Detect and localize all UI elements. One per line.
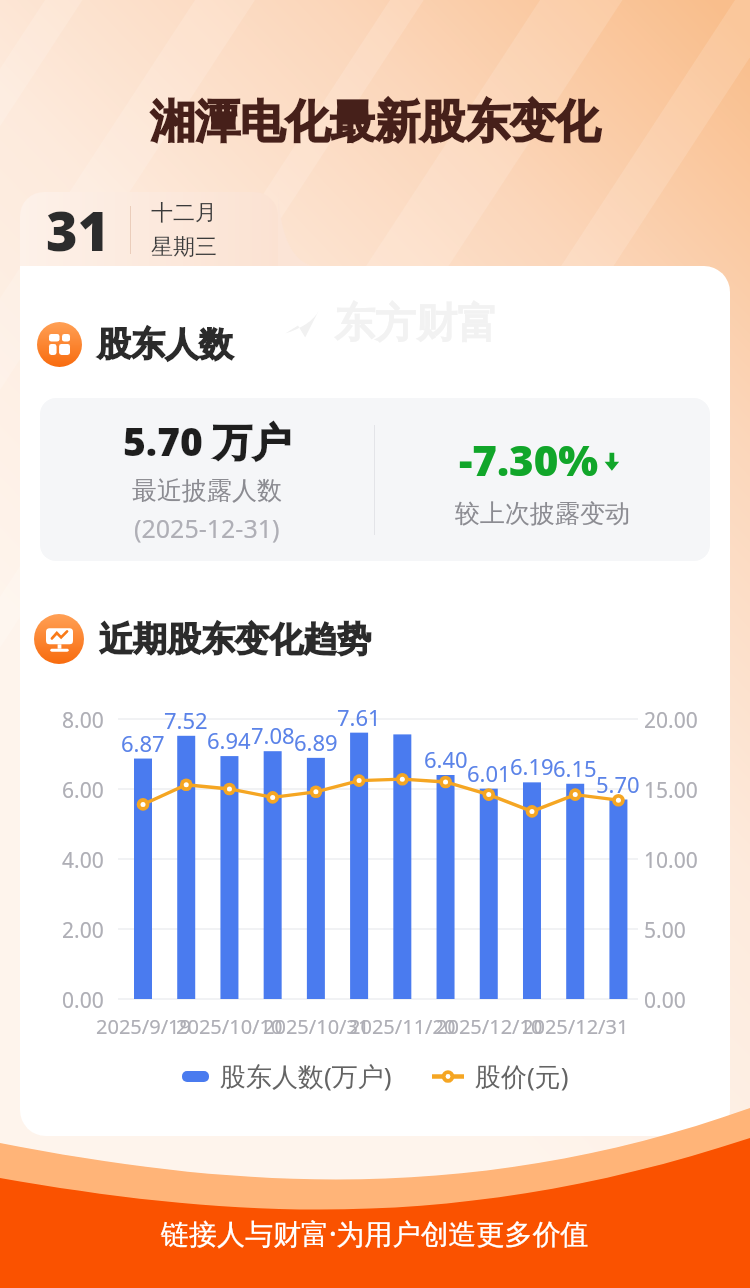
staticText: 2.00 <box>62 916 104 945</box>
staticText: 5.70 <box>596 769 640 799</box>
staticText: 5.70 万户 <box>123 414 291 467</box>
staticText: 15.00 <box>644 776 698 805</box>
staticText: 2025/12/31 <box>522 1013 629 1040</box>
other: 股东人数 <box>37 322 82 367</box>
staticText: -7.30% <box>459 431 599 488</box>
staticText: 7.08 <box>251 720 295 750</box>
staticText: 较上次披露变动 <box>455 498 630 529</box>
staticText: 6.94 <box>207 725 251 755</box>
staticText: 20.00 <box>644 706 698 735</box>
staticText: 6.19 <box>510 751 554 781</box>
staticText: 最近披露人数 <box>132 475 282 506</box>
staticText: 6.00 <box>62 776 104 805</box>
staticText: 链接人与财富·为用户创造更多价值 <box>161 1214 589 1252</box>
other: 近期股东变化趋势 <box>34 614 84 664</box>
staticText: 6.89 <box>294 727 338 757</box>
staticText: 5.00 <box>644 916 686 945</box>
staticText: 2025/9/19 <box>96 1013 191 1040</box>
staticText: 星期三 <box>151 233 217 261</box>
staticText: (2025-12-31) <box>134 511 280 545</box>
staticText: 2025/11/20 <box>349 1013 456 1040</box>
staticText: 6.01 <box>467 758 511 788</box>
staticText: 0.00 <box>644 986 686 1015</box>
staticText: 6.15 <box>553 753 597 783</box>
staticText: 7.61 <box>337 702 381 732</box>
staticText: 近期股东变化趋势 <box>99 618 371 661</box>
staticText: 股东人数(万户) <box>220 1058 392 1094</box>
staticText: 2025/12/10 <box>436 1013 543 1040</box>
staticText: 8.00 <box>62 706 104 735</box>
button[interactable]: 股东人数(万户) <box>178 1054 396 1098</box>
staticText: 股价(元) <box>475 1058 569 1094</box>
staticText: 31 <box>46 193 110 267</box>
staticText: 股东人数 <box>97 323 233 366</box>
staticText: 7.52 <box>164 705 208 735</box>
staticText: 湘潭电化最新股东变化 <box>150 94 600 151</box>
staticText: 4.00 <box>62 846 104 875</box>
staticText: 2025/10/10 <box>176 1013 283 1040</box>
staticText: 东方财富 <box>334 298 498 350</box>
staticText: 十二月 <box>151 199 217 227</box>
staticText: 2025/10/31 <box>263 1013 370 1040</box>
button[interactable]: 股价(元) <box>428 1054 573 1098</box>
button[interactable]: 股东人数 <box>37 322 233 367</box>
staticText: 6.87 <box>121 728 165 758</box>
button[interactable]: 近期股东变化趋势 <box>34 614 371 664</box>
staticText: 10.00 <box>644 846 698 875</box>
staticText: 6.40 <box>424 744 468 774</box>
staticText: 0.00 <box>62 986 104 1015</box>
